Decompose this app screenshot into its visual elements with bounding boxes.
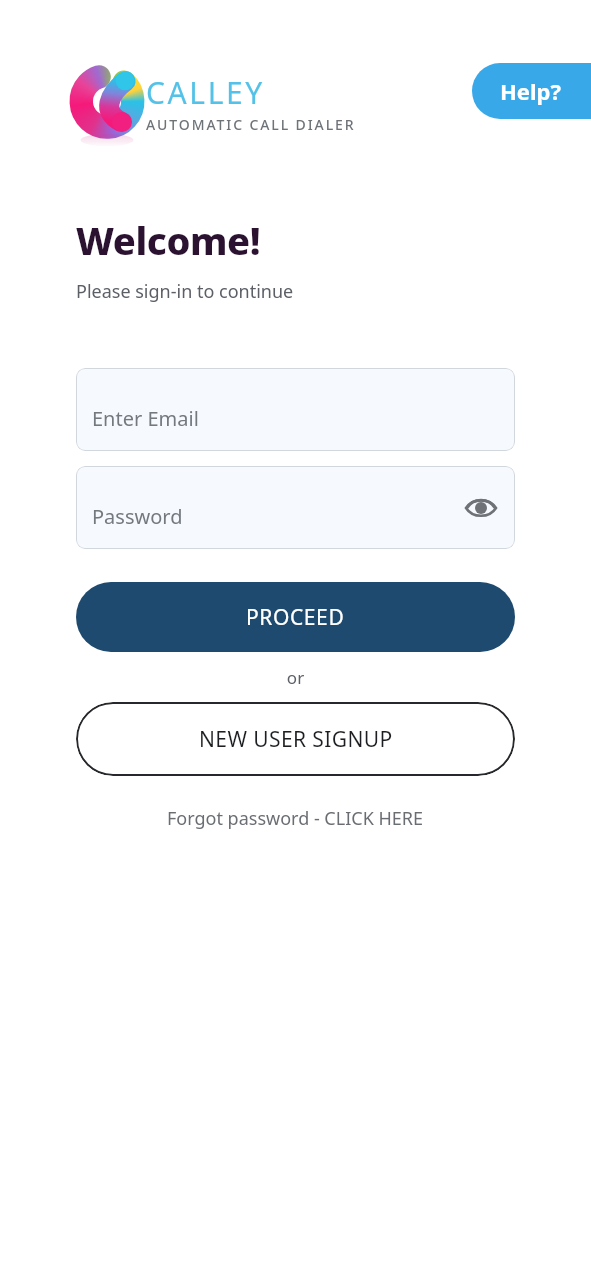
- staticText: AUTOMATIC CALL DIALER: [146, 115, 356, 134]
- button[interactable]: PROCEED: [76, 582, 515, 652]
- staticText: or: [76, 666, 515, 689]
- button[interactable]: Enter Email: [76, 368, 515, 451]
- staticText: Welcome!: [76, 214, 261, 266]
- staticText: CALLEY: [146, 72, 265, 113]
- staticText: NEW USER SIGNUP: [199, 725, 393, 754]
- button[interactable]: Forgot password - CLICK HERE: [76, 806, 515, 831]
- button[interactable]: NEW USER SIGNUP: [76, 702, 515, 776]
- staticText: Password: [92, 503, 183, 530]
- button[interactable]: Password: [76, 466, 515, 549]
- staticText: Enter Email: [92, 405, 199, 432]
- staticText: Help?: [500, 76, 561, 106]
- staticText: PROCEED: [246, 603, 345, 632]
- button[interactable]: Show password: [459, 486, 503, 530]
- staticText: Forgot password - CLICK HERE: [167, 806, 424, 831]
- button[interactable]: Help: [472, 63, 591, 119]
- staticText: Please sign-in to continue: [76, 279, 294, 304]
